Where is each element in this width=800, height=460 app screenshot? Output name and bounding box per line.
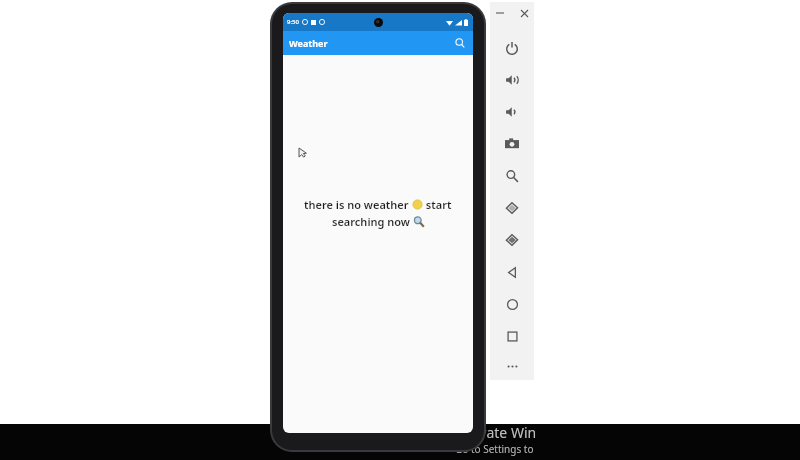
- button[interactable]: Close: [516, 5, 532, 21]
- button[interactable]: Screenshot: [496, 128, 528, 160]
- button[interactable]: Search: [451, 34, 469, 52]
- staticText: 9:50: [287, 18, 299, 26]
- staticText: there is no weather: [304, 197, 412, 212]
- staticText: searching now: [332, 214, 413, 229]
- button[interactable]: Rotate left: [496, 192, 528, 224]
- staticText: start: [423, 197, 452, 212]
- staticText: خدمات: [356, 424, 436, 452]
- button[interactable]: Zoom: [496, 160, 528, 192]
- button[interactable]: Power: [496, 32, 528, 64]
- staticText: Activate Win: [455, 423, 537, 442]
- button[interactable]: Volume up: [496, 64, 528, 96]
- button[interactable]: Home: [496, 288, 528, 320]
- staticText: Go to Settings to: [455, 442, 534, 456]
- button[interactable]: More: [496, 352, 528, 380]
- button[interactable]: Rotate right: [496, 224, 528, 256]
- button[interactable]: Back: [496, 256, 528, 288]
- button[interactable]: Volume down: [496, 96, 528, 128]
- button[interactable]: Overview: [496, 320, 528, 352]
- button[interactable]: Minimize: [492, 5, 508, 21]
- staticText: Weather: [289, 37, 328, 49]
